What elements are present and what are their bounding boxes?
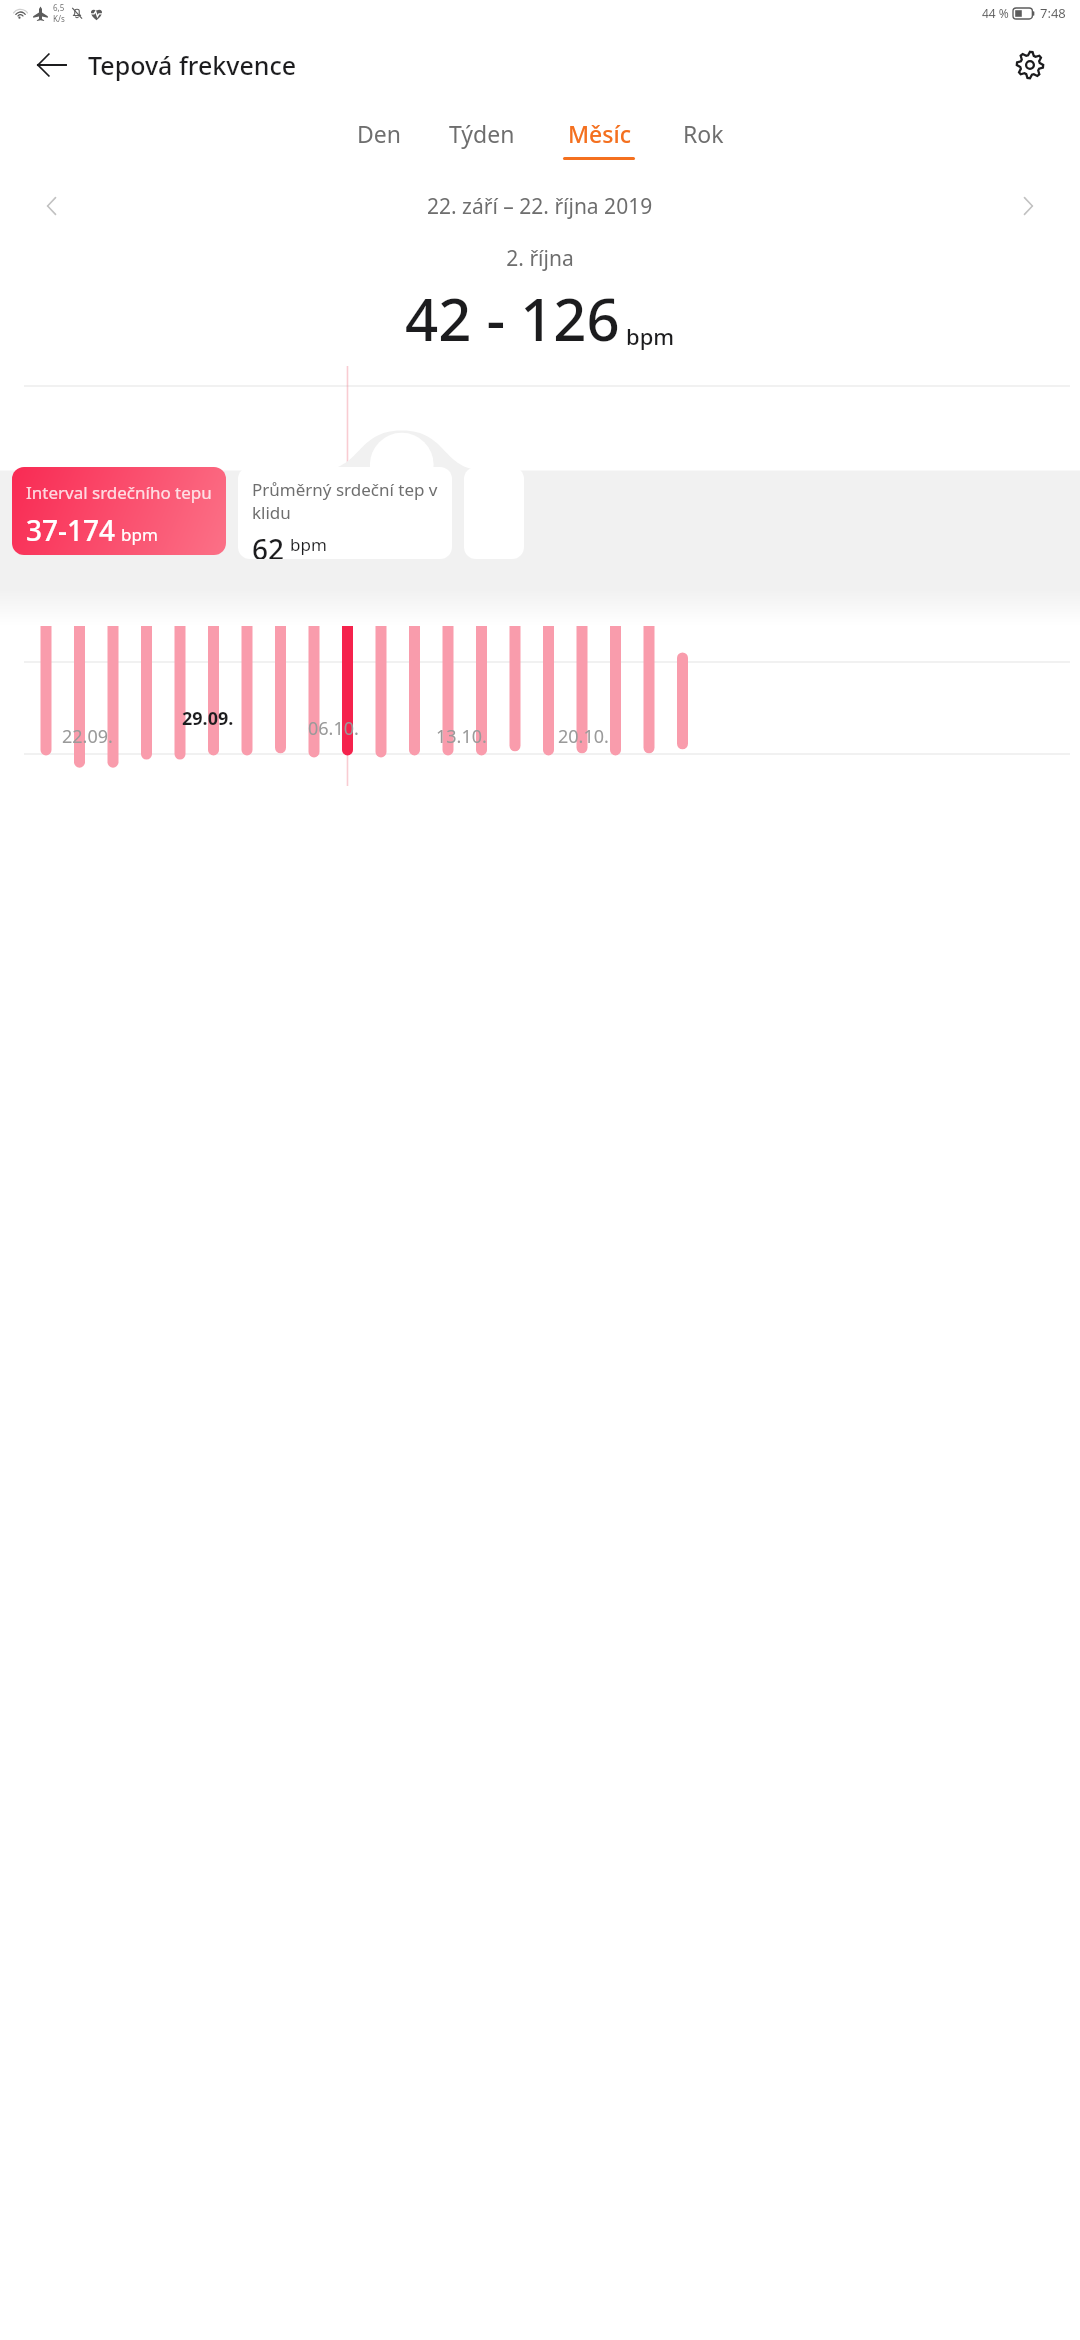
staticText: 44 % [982,5,1009,21]
staticText: 29.09. [182,706,234,731]
staticText: 7:48 [1040,4,1066,22]
staticText: bpm [121,523,158,546]
staticText: Interval srdečního tepu [26,481,212,504]
staticText: 42 - 126 [405,279,620,358]
staticText: Týden [449,118,515,149]
button[interactable]: Interval srdečního tepu [12,467,226,555]
staticText: Průměrný srdeční tep v klidu [252,478,452,524]
staticText: K/s [53,13,65,24]
button[interactable]: Den [351,112,407,166]
staticText: 06.10. [308,716,359,741]
staticText: Den [357,118,401,149]
button[interactable]: Previous period [30,184,74,228]
staticText: Rok [683,118,724,149]
staticText: 13.10. [436,724,487,749]
staticText: 6,5 [53,2,65,13]
staticText: bpm [626,321,675,351]
button[interactable]: Týden [443,112,521,166]
staticText: 22. září – 22. října 2019 [427,192,653,221]
staticText: Tepová frekvence [88,48,297,82]
staticText: Měsíc [568,118,631,149]
button[interactable]: Next period [1006,184,1050,228]
staticText: 22.09. [62,724,113,749]
button[interactable]: Měsíc [557,112,641,166]
button[interactable]: Průměrný srdeční tep v klidu [238,467,452,559]
button[interactable]: Rok [677,112,730,166]
button[interactable]: Back [28,41,76,89]
staticText: bpm [290,533,327,556]
staticText: 20.10. [558,724,609,749]
staticText: 62 [252,530,285,559]
button[interactable]: Settings [1006,41,1054,89]
staticText: 37-174 [26,511,116,549]
staticText: 2. října [0,244,1080,273]
